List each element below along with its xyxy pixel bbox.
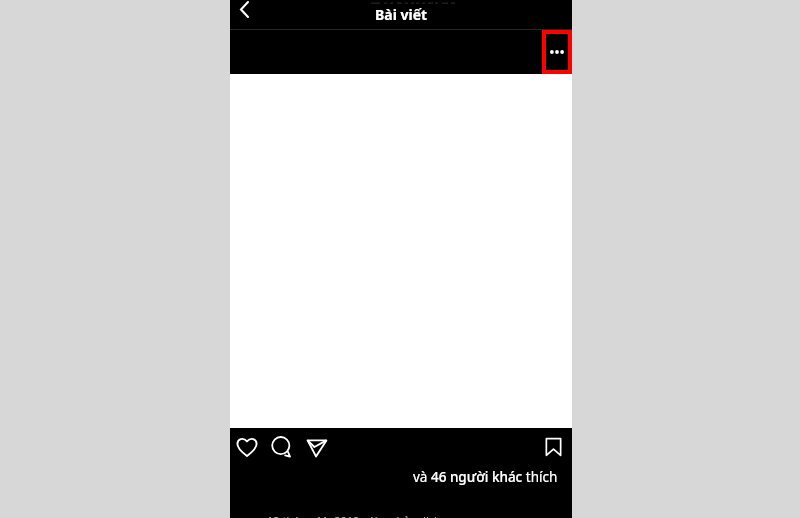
staticText: 12 tháng 11, 2019 Xem bản dịch [267, 513, 441, 518]
button[interactable]: Back [232, 0, 256, 20]
button[interactable]: Like [234, 434, 260, 460]
staticText: Bài viết [375, 5, 428, 24]
button[interactable]: More options [546, 34, 568, 70]
button[interactable]: Comment [269, 434, 295, 460]
button[interactable]: Save [541, 435, 565, 459]
staticText: và 46 người khác thích [413, 468, 558, 486]
button[interactable]: Share [304, 434, 330, 460]
